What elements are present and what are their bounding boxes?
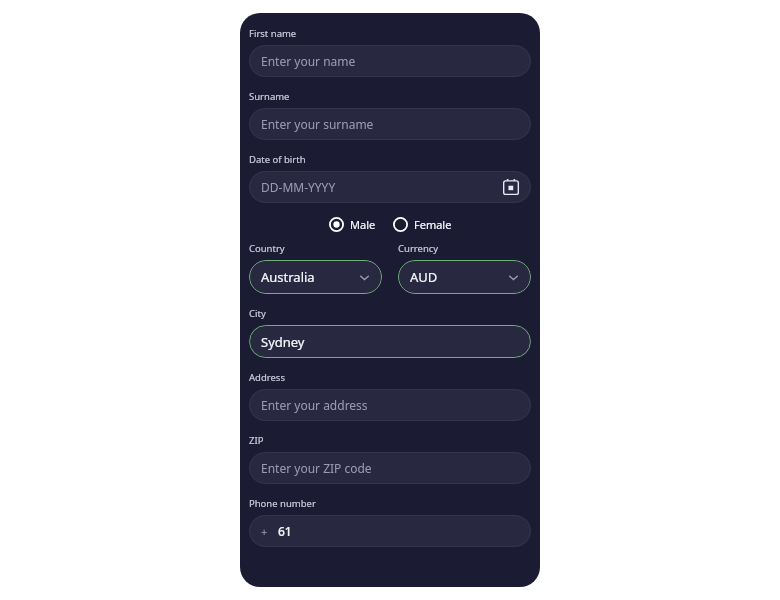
button[interactable]: AUD bbox=[398, 260, 531, 294]
staticText: Australia bbox=[261, 268, 359, 286]
button[interactable]: Enter your surname bbox=[249, 108, 531, 140]
button[interactable]: Enter your address bbox=[249, 389, 531, 421]
staticText: + bbox=[261, 524, 268, 539]
button[interactable]: Australia bbox=[249, 260, 382, 294]
button[interactable]: + bbox=[249, 515, 531, 547]
button[interactable]: Female bbox=[393, 217, 452, 232]
button[interactable]: DD-MM-YYYY bbox=[249, 171, 531, 203]
button[interactable]: Enter your name bbox=[249, 45, 531, 77]
staticText: Enter your surname bbox=[261, 116, 519, 132]
staticText: Enter your address bbox=[261, 397, 519, 413]
staticText: Currency bbox=[398, 242, 439, 255]
staticText: DD-MM-YYYY bbox=[261, 179, 503, 195]
staticText: Address bbox=[249, 371, 285, 384]
staticText: Surname bbox=[249, 90, 290, 103]
staticText: City bbox=[249, 307, 266, 320]
button[interactable]: Pick date bbox=[503, 179, 519, 195]
staticText: 61 bbox=[278, 523, 292, 539]
staticText: Enter your name bbox=[261, 53, 519, 69]
staticText: Sydney bbox=[261, 333, 305, 351]
button[interactable]: Sydney bbox=[249, 325, 531, 358]
staticText: Country bbox=[249, 242, 285, 255]
staticText: Enter your ZIP code bbox=[261, 460, 519, 476]
staticText: Female bbox=[414, 217, 452, 232]
staticText: First name bbox=[249, 27, 297, 40]
button[interactable]: Enter your ZIP code bbox=[249, 452, 531, 484]
button[interactable]: Male bbox=[329, 217, 376, 232]
staticText: Date of birth bbox=[249, 153, 306, 166]
staticText: Phone number bbox=[249, 497, 316, 510]
staticText: AUD bbox=[410, 268, 508, 286]
staticText: ZIP bbox=[249, 434, 264, 447]
staticText: Male bbox=[350, 217, 376, 232]
